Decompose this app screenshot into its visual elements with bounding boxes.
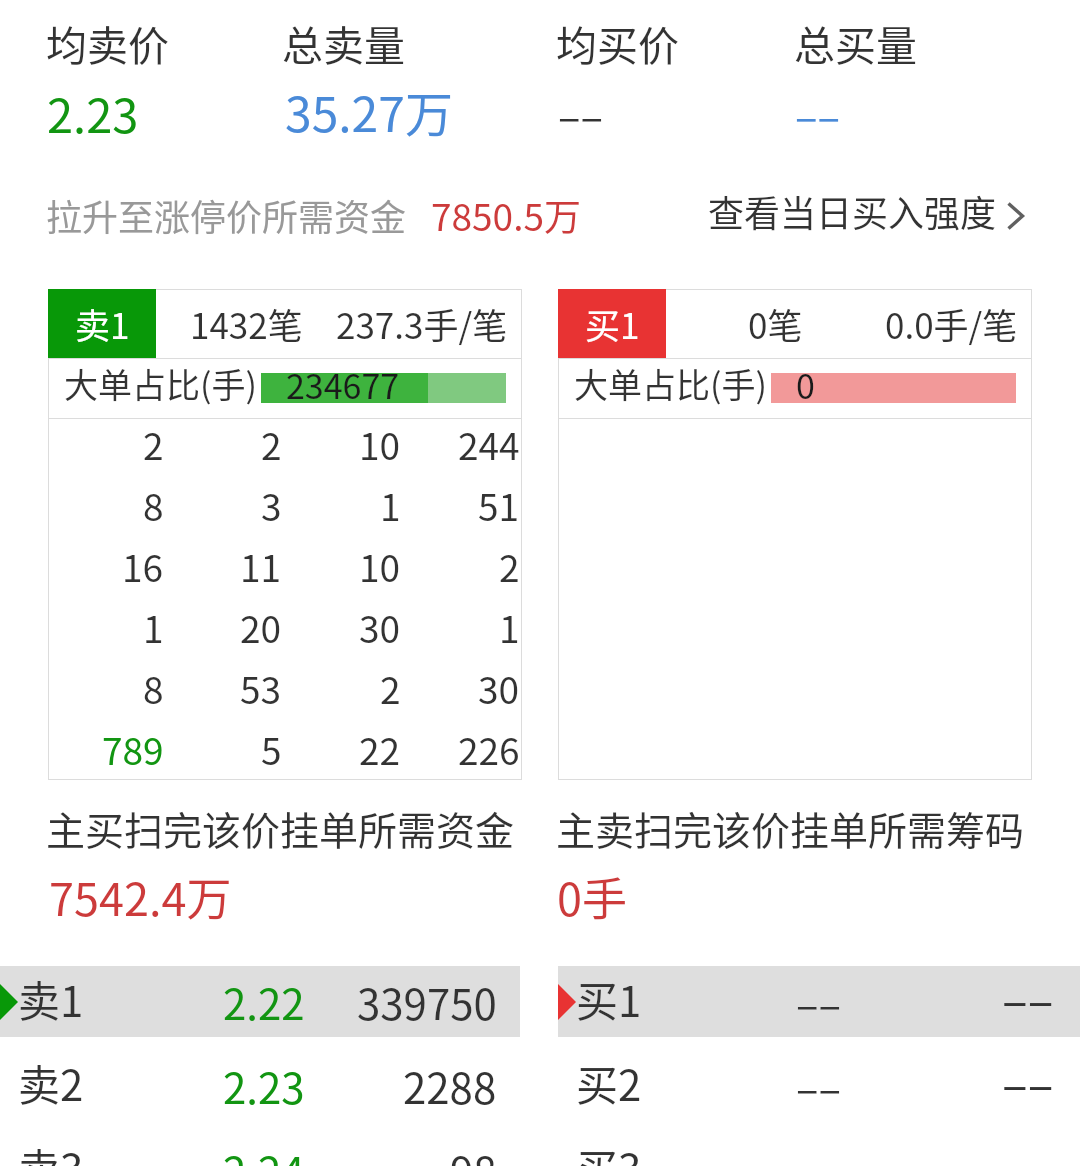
- staticText: 7850.5万: [431, 188, 581, 242]
- staticText: 2.23: [47, 78, 139, 146]
- staticText: 2: [261, 417, 282, 471]
- staticText: 0笔: [748, 298, 803, 349]
- staticText: 1432笔: [190, 298, 303, 349]
- staticText: 3: [261, 478, 282, 532]
- staticText: 2: [380, 661, 401, 715]
- staticText: 2288: [403, 1055, 497, 1116]
- staticText: 8: [143, 661, 164, 715]
- staticText: 0.0手/笔: [885, 298, 1018, 349]
- staticText: 35.27万: [285, 76, 453, 146]
- staticText: 1: [143, 600, 164, 654]
- staticText: 789: [102, 722, 164, 776]
- staticText: 30: [359, 600, 401, 654]
- staticText: 2.24: [223, 1139, 305, 1166]
- button[interactable]: 买1: [558, 289, 666, 358]
- button[interactable]: 卖2: [0, 1043, 520, 1127]
- staticText: 8: [143, 478, 164, 532]
- staticText: 51: [478, 478, 520, 532]
- staticText: 7542.4万: [49, 864, 232, 929]
- staticText: 总买量: [794, 13, 917, 72]
- staticText: 2: [143, 417, 164, 471]
- staticText: 均卖价: [46, 13, 169, 72]
- button[interactable]: 买3: [558, 1127, 1080, 1166]
- button[interactable]: 卖3: [0, 1127, 520, 1166]
- button[interactable]: 卖1: [48, 289, 156, 358]
- staticText: ––: [796, 971, 842, 1032]
- staticText: 2.23: [223, 1055, 305, 1116]
- staticText: 20: [240, 600, 282, 654]
- staticText: 234677: [286, 360, 400, 406]
- staticText: 卖1: [75, 298, 130, 349]
- staticText: 卖3: [18, 1136, 84, 1166]
- staticText: 1: [380, 478, 401, 532]
- staticText: 2.22: [223, 971, 305, 1032]
- button[interactable]: 卖1: [0, 959, 520, 1043]
- staticText: 卖2: [18, 1052, 84, 1113]
- staticText: 339750: [357, 971, 497, 1032]
- button[interactable]: 查看当日买入强度: [698, 180, 1032, 242]
- staticText: ––: [1002, 962, 1054, 1032]
- staticText: 237.3手/笔: [336, 298, 508, 349]
- staticText: 22: [359, 722, 401, 776]
- staticText: 244: [458, 417, 520, 471]
- staticText: 11: [240, 539, 282, 593]
- other: 查看当日买入强度: [1007, 201, 1024, 231]
- staticText: 10: [359, 417, 401, 471]
- staticText: 5: [261, 722, 282, 776]
- staticText: 拉升至涨停价所需资金: [46, 189, 407, 241]
- staticText: 大单占比(手): [64, 359, 257, 408]
- staticText: 主卖扫完该价挂单所需筹码: [556, 800, 1025, 856]
- staticText: 买3: [576, 1136, 642, 1166]
- staticText: 0手: [557, 864, 627, 929]
- staticText: ––: [1002, 1046, 1054, 1116]
- button[interactable]: 买2: [558, 1043, 1080, 1127]
- staticText: 53: [240, 661, 282, 715]
- staticText: 总卖量: [282, 13, 405, 72]
- staticText: 30: [478, 661, 520, 715]
- staticText: 16: [122, 539, 164, 593]
- staticText: 均买价: [556, 13, 679, 72]
- staticText: 0: [796, 360, 815, 406]
- staticText: 10: [359, 539, 401, 593]
- staticText: 226: [458, 722, 520, 776]
- staticText: 查看当日买入强度: [708, 185, 997, 237]
- staticText: 98: [450, 1139, 497, 1166]
- staticText: 买1: [576, 968, 642, 1029]
- staticText: ––: [558, 83, 604, 144]
- staticText: 2: [499, 539, 520, 593]
- staticText: 大单占比(手): [574, 359, 767, 408]
- staticText: 主买扫完该价挂单所需资金: [46, 800, 515, 856]
- staticText: 买2: [576, 1052, 642, 1113]
- staticText: 卖1: [18, 968, 84, 1029]
- button[interactable]: 买1: [558, 959, 1080, 1043]
- staticText: 1: [499, 600, 520, 654]
- staticText: 买1: [585, 298, 640, 349]
- staticText: ––: [796, 1055, 842, 1116]
- staticText: ––: [795, 83, 841, 144]
